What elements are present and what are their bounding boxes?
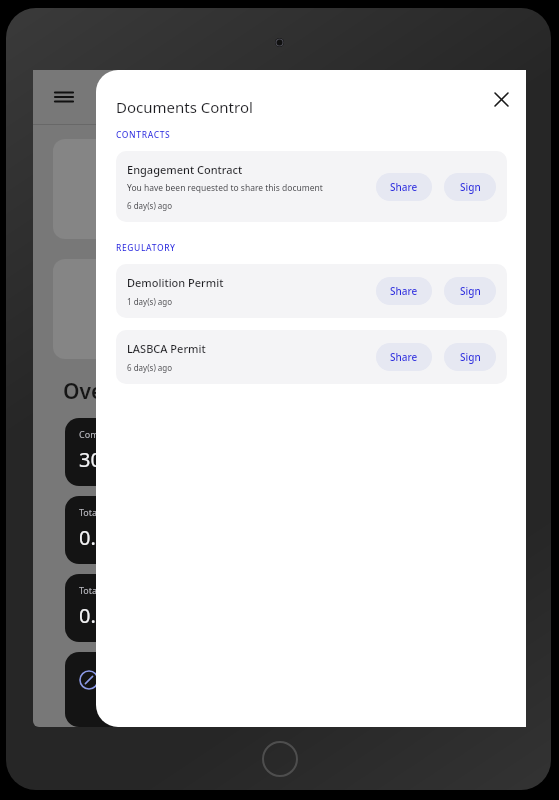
staticText: Share — [390, 284, 418, 298]
staticText: Demolition Permit — [127, 275, 224, 290]
button[interactable]: Close — [484, 82, 518, 116]
staticText: 0.0 — [79, 524, 108, 551]
button[interactable]: LASBCA Permit — [116, 330, 507, 384]
staticText: Share — [390, 180, 418, 194]
button[interactable]: Share — [376, 277, 432, 305]
staticText: Sign — [460, 350, 481, 364]
staticText: 6 day(s) ago — [127, 362, 173, 373]
staticText: Total Paid — [79, 584, 121, 596]
staticText: Overview — [63, 377, 160, 406]
staticText: 1 day(s) ago — [127, 296, 173, 307]
staticText: Completion — [79, 428, 129, 440]
staticText: You have been requested to share this do… — [127, 182, 323, 194]
button[interactable]: Sign — [444, 277, 496, 305]
staticText: Engagement Contract — [127, 162, 243, 177]
staticText: LASBCA Permit — [127, 341, 206, 356]
staticText: Total Cost — [79, 506, 121, 518]
button[interactable]: Sign — [444, 343, 496, 371]
button[interactable]: Sign — [444, 173, 496, 201]
staticText: 6 day(s) ago — [127, 200, 173, 211]
staticText: Documents Control — [116, 97, 253, 117]
button[interactable]: Engagement Contract — [116, 151, 507, 222]
button[interactable]: Demolition Permit — [116, 264, 507, 318]
staticText: Sign — [460, 180, 481, 194]
button[interactable]: Share — [376, 343, 432, 371]
staticText: Share — [390, 350, 418, 364]
button[interactable]: Share — [376, 173, 432, 201]
staticText: CONTRACTS — [116, 129, 171, 141]
staticText: REGULATORY — [116, 242, 176, 254]
staticText: Sign — [460, 284, 481, 298]
staticText: 0.0 — [79, 602, 108, 629]
staticText: 30% — [79, 446, 119, 473]
